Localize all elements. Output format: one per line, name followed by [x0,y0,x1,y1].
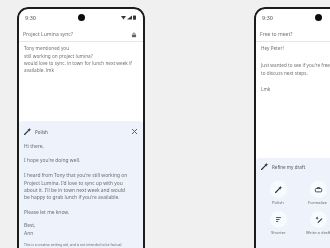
staticText: Shorter [271,230,286,236]
staticText: Best, Ann [24,222,36,236]
staticText: Lmk [261,86,271,92]
button[interactable]: Write a draft [298,211,330,236]
staticText: Hi there, [24,143,44,150]
staticText: 9:30 [262,14,273,21]
staticText: Project Lumina sync? [23,31,74,38]
staticText: Please let me know. [24,209,70,216]
staticText: Write a draft [306,230,330,236]
staticText: Free to meet? [260,31,293,38]
staticText: This is a creative writing aid, and is n… [24,242,123,247]
staticText: Hey Peter! [261,45,284,51]
staticText: I hope you're doing well. [24,157,81,164]
staticText: 9:30 [25,14,36,21]
staticText: Tony mentioned you still working on proj… [24,45,132,73]
staticText: Formalize [308,200,328,206]
staticText: Polish [35,129,48,135]
staticText: Just wanted to see if you're free to dis… [261,62,330,76]
button[interactable]: Polish [258,181,298,206]
staticText: Polish [272,200,284,206]
button[interactable]: Encrypted [130,31,138,39]
staticText: I heard from Tony that you're still work… [24,172,128,200]
staticText: Refine my draft [272,164,306,170]
button[interactable]: Close [130,127,139,136]
button[interactable]: Shorter [258,211,298,236]
button[interactable]: Formalize [298,181,330,206]
